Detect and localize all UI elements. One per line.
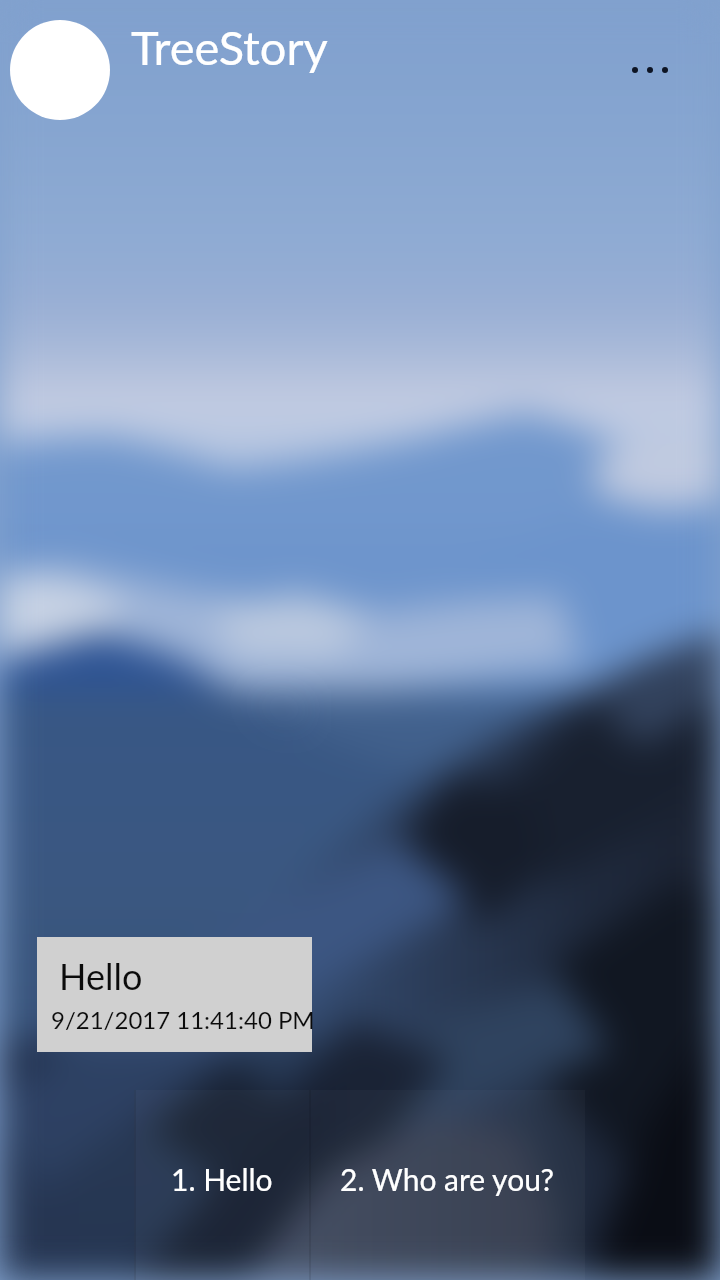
staticText: 1. Hello [171,1161,273,1197]
button[interactable]: More options [612,42,688,98]
button[interactable]: Hello [37,937,312,1052]
button[interactable]: 1. Hello [134,1090,309,1280]
staticText: Hello [59,954,143,997]
staticText: 9/21/2017 11:41:40 PM [51,1005,315,1034]
staticText: 2. Who are you? [340,1161,555,1197]
button[interactable]: 2. Who are you? [309,1090,585,1280]
button[interactable]: Profile picture [10,20,110,120]
button[interactable]: TreeStory [131,19,328,75]
